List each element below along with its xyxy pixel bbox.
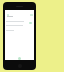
button[interactable]: Status: [29, 22, 32, 24]
button[interactable]: Add: [18, 57, 21, 60]
